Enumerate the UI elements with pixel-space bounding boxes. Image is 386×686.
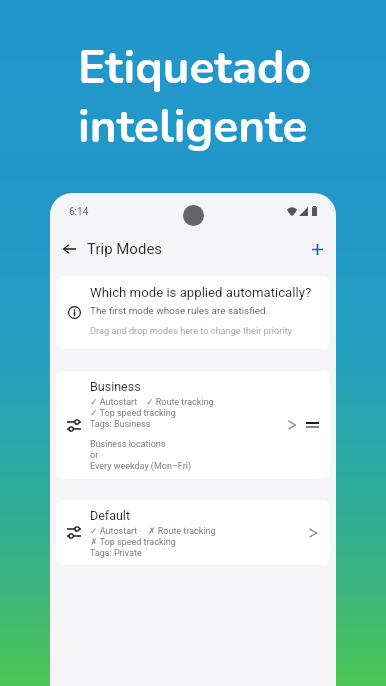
staticText: ✓ Top speed tracking bbox=[90, 408, 176, 419]
staticText: Every weekday (Mon–Fri) bbox=[90, 461, 192, 472]
staticText: Etiquetado inteligente bbox=[78, 36, 312, 158]
staticText: ✗ Route tracking bbox=[148, 526, 216, 537]
button[interactable]: Business bbox=[56, 371, 330, 479]
staticText: ✓ Autostart bbox=[90, 526, 138, 537]
staticText: Tags: Private bbox=[90, 548, 142, 559]
button[interactable]: Add trip mode bbox=[301, 233, 333, 265]
staticText: Which mode is applied automatically? bbox=[90, 285, 312, 300]
staticText: ✓ Route tracking bbox=[146, 397, 214, 408]
staticText: 6:14 bbox=[69, 206, 89, 218]
staticText: Business locations bbox=[90, 439, 166, 450]
button[interactable]: Reorder bbox=[300, 415, 324, 435]
staticText: Trip Modes bbox=[87, 240, 163, 258]
button[interactable]: Back bbox=[53, 233, 85, 265]
staticText: ✓ Autostart bbox=[90, 397, 138, 408]
staticText: ✗ Top speed tracking bbox=[90, 537, 176, 548]
staticText: or bbox=[90, 450, 99, 461]
button[interactable]: Default bbox=[56, 500, 330, 565]
staticText: The first mode whose rules are satisfied bbox=[90, 305, 266, 317]
button[interactable]: Which mode is applied automatically? bbox=[56, 276, 330, 349]
staticText: Tags: Business bbox=[90, 419, 151, 430]
staticText: Business bbox=[90, 379, 141, 394]
staticText: Default bbox=[90, 508, 130, 523]
staticText: Drag and drop modes here to change their… bbox=[90, 325, 292, 336]
